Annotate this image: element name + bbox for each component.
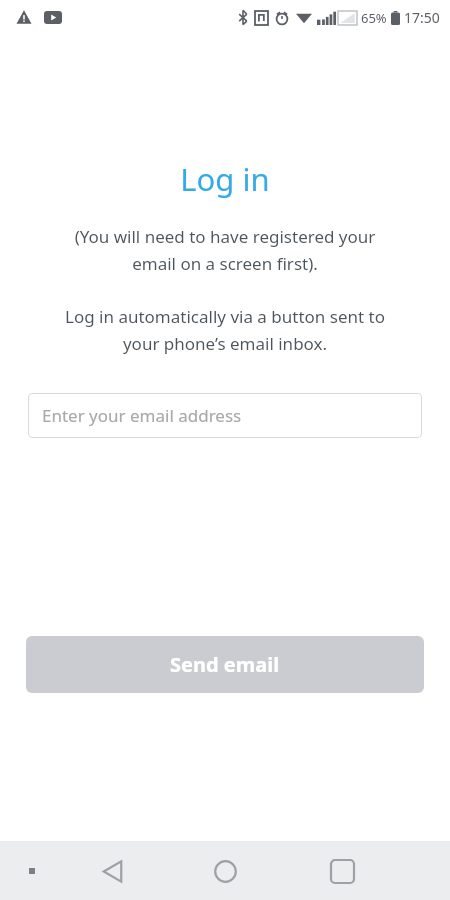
button[interactable]: Enter your email address (28, 393, 422, 438)
staticText: 17:50 (404, 8, 440, 27)
staticText: Enter your email address (42, 404, 242, 427)
staticText: 65% (361, 9, 387, 27)
staticText: (You will need to have registered your e… (24, 225, 426, 275)
staticText: Send email (170, 651, 280, 678)
button[interactable]: Keyboard switcher (18, 857, 46, 885)
staticText: Log in (0, 158, 450, 200)
staticText: Log in automatically via a button sent t… (18, 305, 432, 355)
button[interactable]: Recent apps (320, 849, 364, 893)
button[interactable]: Back (90, 849, 134, 893)
button[interactable]: Send email (26, 636, 424, 693)
button[interactable]: Home (203, 849, 247, 893)
